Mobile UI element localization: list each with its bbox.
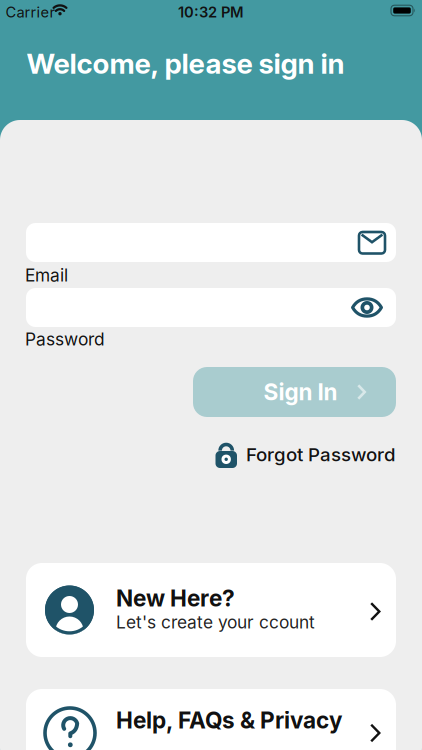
button[interactable]: Forgot Password [215,441,396,468]
staticText: Email [25,265,68,285]
button[interactable]: Email [26,223,396,262]
button[interactable]: New Here? [26,563,396,657]
staticText: Help, FAQs & Privacy [116,707,342,734]
staticText: Welcome, please sign in [26,47,344,80]
staticText: Password [25,329,105,349]
staticText: Forgot Password [246,443,396,465]
staticText: Carrier [5,3,55,21]
button[interactable]: Help, FAQs & Privacy [26,689,396,750]
staticText: 10:32 PM [178,3,244,21]
button[interactable]: Password [26,288,396,327]
button[interactable]: Sign In [193,367,396,417]
staticText: Sign In [263,379,337,405]
staticText: Let's create your ccount [116,612,315,632]
staticText: New Here? [116,585,235,612]
